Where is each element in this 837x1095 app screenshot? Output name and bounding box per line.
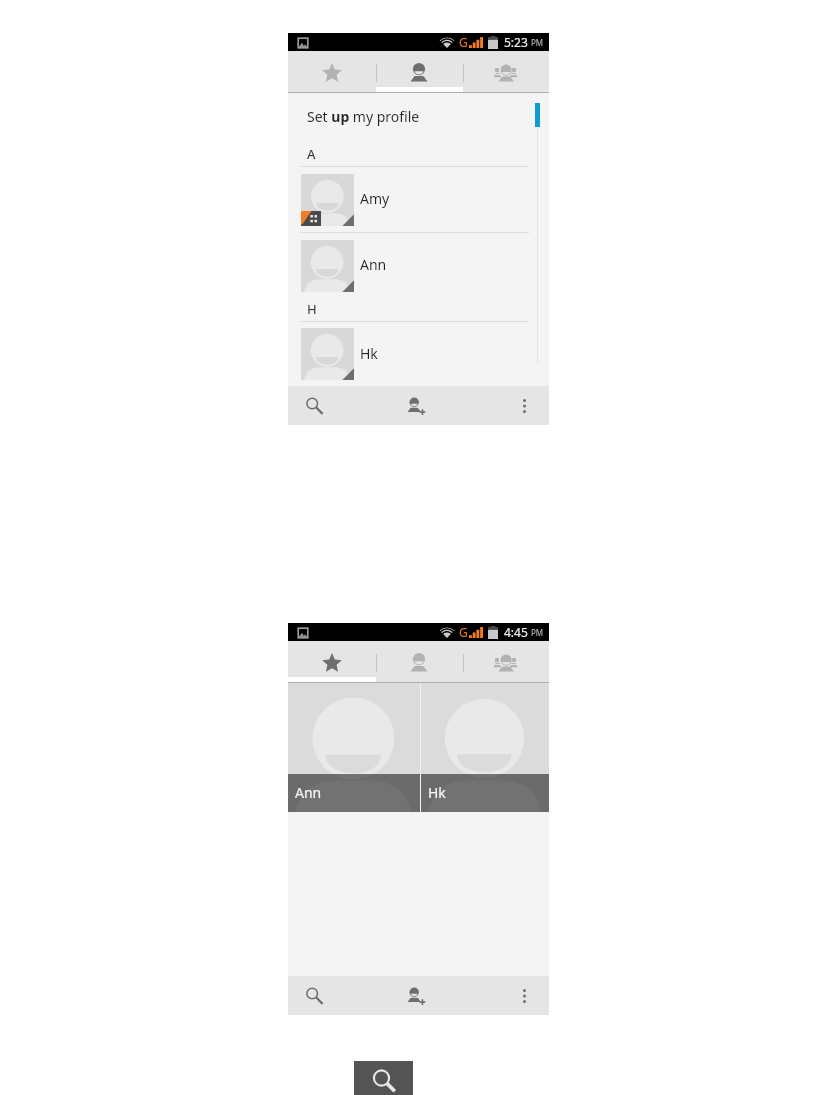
button[interactable]: Add contact (390, 976, 442, 1015)
staticText: Hk (360, 344, 378, 363)
staticText: PM (531, 37, 544, 48)
staticText: Hk (428, 783, 446, 802)
button[interactable]: Groups (462, 51, 549, 92)
staticText: G (459, 34, 468, 50)
staticText: Ann (360, 255, 387, 274)
button[interactable]: More options (499, 976, 549, 1015)
button[interactable]: Groups (462, 641, 549, 682)
button[interactable]: Set up my profile (288, 93, 549, 144)
button[interactable]: Amy (288, 167, 549, 233)
button[interactable]: Search (288, 976, 340, 1015)
staticText: A (307, 145, 316, 163)
button[interactable]: Contacts (375, 51, 462, 92)
button[interactable]: Contacts (375, 641, 462, 682)
staticText: Set up my profile (307, 107, 420, 126)
button[interactable]: Hk (288, 322, 549, 386)
button[interactable]: Search (354, 1061, 413, 1095)
button[interactable]: Favourites (288, 641, 375, 682)
staticText: H (307, 300, 317, 318)
button[interactable]: More options (499, 386, 549, 425)
staticText: PM (531, 627, 544, 638)
button[interactable]: Add contact (390, 386, 442, 425)
button[interactable]: Ann (288, 233, 549, 299)
staticText: 4:45 (504, 624, 528, 640)
staticText: 5:23 (504, 34, 528, 50)
staticText: G (459, 624, 468, 640)
button[interactable]: Hk (421, 683, 549, 812)
staticText: Amy (360, 189, 390, 208)
button[interactable]: Favourites (288, 51, 375, 92)
button[interactable]: Search (288, 386, 340, 425)
button[interactable]: Ann (288, 683, 420, 812)
staticText: Ann (295, 783, 322, 802)
